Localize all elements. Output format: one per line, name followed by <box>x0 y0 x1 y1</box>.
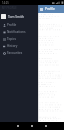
button[interactable]: Tom Smith <box>0 13 38 20</box>
staticText: Profile <box>45 7 55 11</box>
button[interactable]: Back <box>11 122 25 130</box>
button[interactable]: Profile <box>0 21 38 28</box>
button[interactable]: Recents <box>39 122 53 130</box>
button[interactable]: Open navigation drawer <box>39 7 43 11</box>
staticText: Notifications <box>7 30 26 34</box>
button[interactable]: Favourites <box>0 49 38 56</box>
staticText: Tom Smith <box>8 15 24 19</box>
staticText: History <box>7 44 18 48</box>
button[interactable]: History <box>0 42 38 49</box>
button[interactable]: Topics <box>0 35 38 42</box>
staticText: Favourites <box>7 51 23 55</box>
staticText: 14:25 <box>2 1 9 5</box>
staticText: MY PROFILE <box>2 6 17 10</box>
button[interactable]: Notifications <box>0 28 38 35</box>
staticText: Topics <box>7 37 17 41</box>
staticText: Profile <box>7 23 17 27</box>
button[interactable]: Home <box>25 122 39 130</box>
